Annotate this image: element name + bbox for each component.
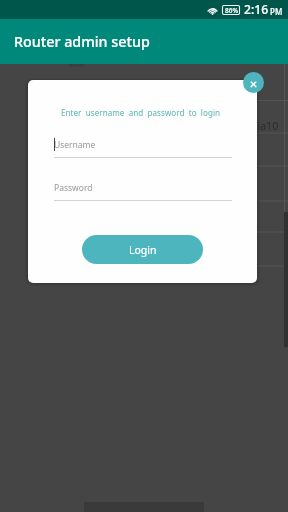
staticText: 86% bbox=[225, 6, 238, 15]
staticText: Password bbox=[54, 182, 93, 194]
staticText: Mia10 bbox=[248, 119, 279, 133]
button[interactable]: Login bbox=[82, 235, 203, 264]
staticText: Enter username and password to login bbox=[61, 107, 221, 118]
staticText: Router admin setup bbox=[14, 32, 150, 51]
staticText: PM bbox=[270, 6, 283, 17]
button[interactable]: Close dialog bbox=[243, 72, 264, 93]
staticText: Login bbox=[129, 243, 157, 257]
staticText: Username bbox=[54, 139, 96, 151]
staticText: 2:16 bbox=[244, 1, 269, 18]
